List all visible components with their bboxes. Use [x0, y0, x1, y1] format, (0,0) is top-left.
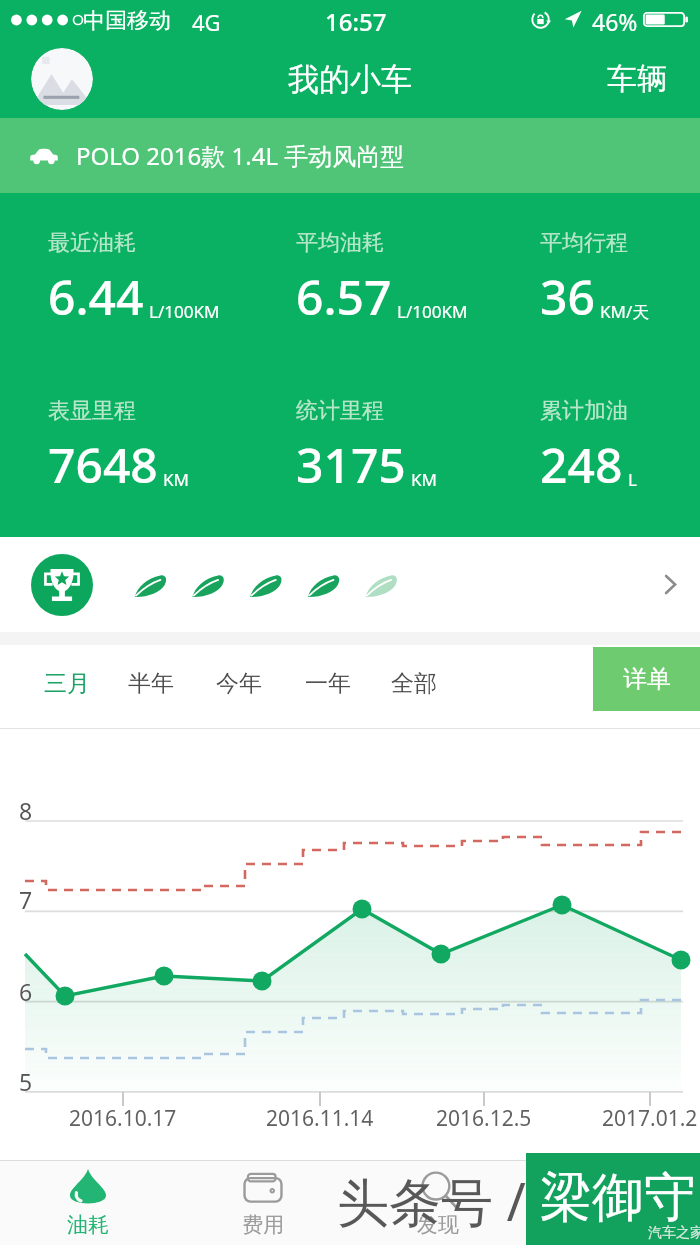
staticText: L/100KM	[149, 300, 220, 323]
staticText: 表显里程	[48, 397, 136, 425]
staticText: 6.57	[296, 264, 392, 329]
staticText: 头条号 /	[337, 1165, 540, 1236]
button[interactable]: 半年	[114, 651, 188, 716]
staticText: 2016.12.5	[436, 1104, 532, 1133]
button[interactable]: 全部	[377, 651, 451, 716]
staticText: 6	[19, 976, 33, 1007]
staticText: 一年	[305, 669, 351, 698]
staticText: KM	[411, 468, 437, 491]
staticText: 我的	[592, 1212, 634, 1238]
staticText: L	[628, 468, 637, 491]
button[interactable]: 三月	[30, 651, 104, 716]
staticText: 平均油耗	[296, 229, 384, 257]
button[interactable]: Profile	[31, 48, 93, 110]
button[interactable]: 费用	[175, 1161, 350, 1245]
staticText: 汽车之家	[648, 1224, 700, 1242]
staticText: 46%	[592, 6, 638, 37]
staticText: 6.44	[48, 264, 144, 329]
staticText: 最近油耗	[48, 229, 136, 257]
staticText: 车辆	[607, 60, 667, 98]
staticText: 2017.01.2	[602, 1104, 698, 1133]
staticText: 半年	[128, 669, 174, 698]
button[interactable]: 我的	[525, 1161, 700, 1245]
staticText: 油耗	[67, 1212, 109, 1238]
staticText: 2016.11.14	[266, 1104, 374, 1133]
staticText: POLO 2016款 1.4L 手动风尚型	[76, 139, 405, 172]
staticText: 费用	[242, 1212, 284, 1238]
staticText: KM/天	[600, 300, 650, 323]
staticText: 我的小车	[288, 60, 412, 99]
staticText: 统计里程	[296, 397, 384, 425]
staticText: L/100KM	[397, 300, 468, 323]
button[interactable]: 发现	[350, 1161, 525, 1245]
staticText: 16:57	[325, 5, 387, 38]
staticText: 梁御守	[540, 1165, 696, 1231]
staticText: 248	[540, 432, 623, 497]
staticText: 平均行程	[540, 229, 628, 257]
staticText: 中国移动	[83, 7, 171, 35]
staticText: 5	[19, 1066, 33, 1097]
staticText: 8	[19, 795, 33, 826]
staticText: 7	[19, 884, 33, 915]
button[interactable]: 今年	[202, 651, 276, 716]
staticText: 4G	[192, 7, 221, 37]
staticText: 发现	[417, 1212, 459, 1238]
staticText: 3175	[296, 432, 406, 497]
button[interactable]: POLO 2016款 1.4L 手动风尚型	[0, 118, 700, 193]
staticText: 7648	[48, 432, 158, 497]
staticText: 三月	[44, 669, 90, 698]
staticText: 全部	[391, 669, 437, 698]
staticText: 详单	[623, 664, 671, 694]
button[interactable]: 详单	[593, 647, 700, 711]
button[interactable]: 一年	[291, 651, 365, 716]
staticText: 今年	[216, 669, 262, 698]
staticText: 2016.10.17	[69, 1104, 177, 1133]
button[interactable]: 油耗	[0, 1161, 175, 1245]
staticText: KM	[163, 468, 189, 491]
staticText: 36	[540, 264, 595, 329]
button[interactable]	[0, 537, 700, 632]
staticText: 累计加油	[540, 397, 628, 425]
button[interactable]: 车辆	[577, 44, 700, 114]
